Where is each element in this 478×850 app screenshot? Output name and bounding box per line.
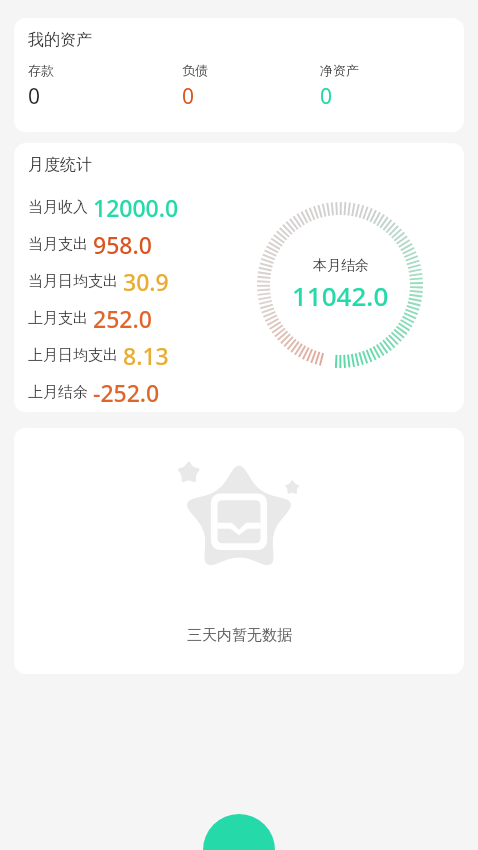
staticText: 30.9 <box>123 266 169 297</box>
staticText: 当月支出 <box>28 235 88 254</box>
staticText: 当月日均支出 <box>28 272 118 291</box>
staticText: 252.0 <box>93 303 152 334</box>
button[interactable]: Add record <box>203 814 275 850</box>
staticText: -252.0 <box>93 377 160 408</box>
staticText: 12000.0 <box>93 192 179 223</box>
staticText: 净资产 <box>320 62 359 78</box>
staticText: 8.13 <box>123 340 169 371</box>
staticText: 上月结余 <box>28 383 88 402</box>
staticText: 本月结余 <box>313 257 369 275</box>
staticText: 我的资产 <box>28 30 92 50</box>
button[interactable]: 负债 <box>182 62 320 111</box>
staticText: 958.0 <box>93 229 152 260</box>
staticText: 上月支出 <box>28 309 88 328</box>
staticText: 0 <box>28 82 41 111</box>
staticText: 0 <box>182 82 195 111</box>
staticText: 存款 <box>28 62 54 78</box>
staticText: 11042.0 <box>292 278 389 313</box>
staticText: 0 <box>320 82 333 111</box>
button[interactable]: 净资产 <box>320 62 440 111</box>
staticText: 月度统计 <box>28 155 92 175</box>
button[interactable]: 我的资产 <box>14 18 464 132</box>
button[interactable]: 存款 <box>28 62 182 111</box>
staticText: 当月收入 <box>28 198 88 217</box>
staticText: 负债 <box>182 62 208 78</box>
staticText: 三天内暂无数据 <box>187 626 292 645</box>
staticText: 上月日均支出 <box>28 346 118 365</box>
button[interactable]: 三天内暂无数据 <box>14 428 464 674</box>
button[interactable]: 月度统计 <box>14 143 464 412</box>
